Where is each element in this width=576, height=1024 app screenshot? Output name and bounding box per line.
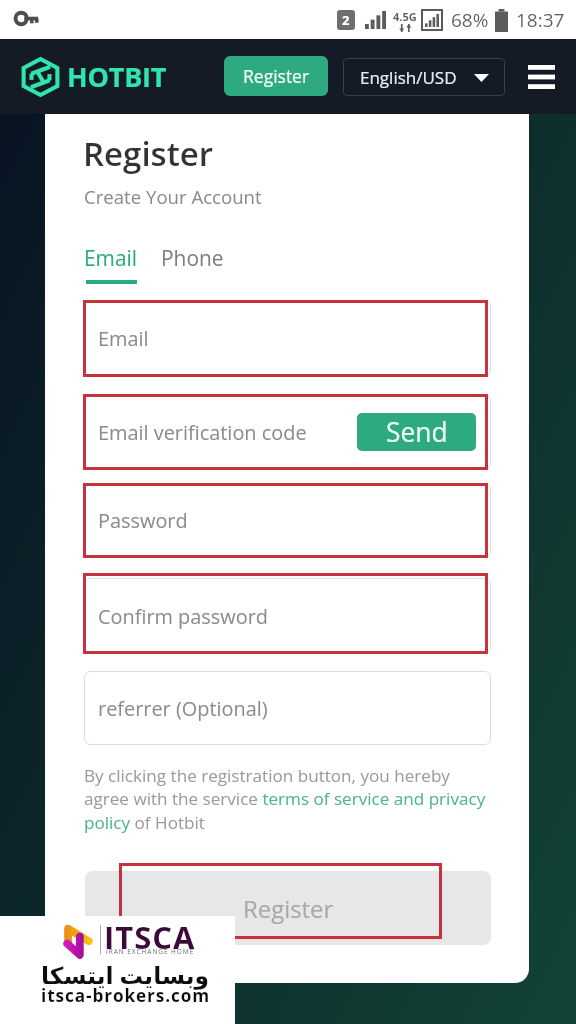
staticText: Email [98, 325, 149, 352]
staticText: itsca-brokers.com [41, 984, 211, 1007]
staticText: Phone [161, 244, 224, 272]
staticText: Email verification code [98, 419, 307, 446]
staticText: وبسایت ایتسکا [41, 959, 210, 991]
staticText: Register [243, 892, 334, 925]
button[interactable]: Password [84, 483, 491, 558]
staticText: By clicking the registration button, you… [84, 764, 494, 834]
staticText: Send [386, 414, 448, 450]
button[interactable]: Menu [518, 54, 564, 100]
button[interactable]: Register [224, 56, 328, 96]
button[interactable]: referrer (Optional) [84, 671, 491, 745]
staticText: 2 [342, 11, 350, 29]
button[interactable]: Send [357, 413, 476, 451]
staticText: Password [98, 507, 188, 534]
staticText: Email [84, 244, 138, 272]
staticText: ITSCA [104, 916, 196, 958]
button[interactable]: Email [84, 244, 138, 284]
button[interactable]: Register [85, 871, 491, 945]
button[interactable]: English/USD [343, 58, 505, 96]
button[interactable]: Email [84, 300, 491, 377]
staticText: 68% [451, 7, 489, 33]
staticText: IRAN EXCHANGE HOME [106, 947, 195, 956]
staticText: referrer (Optional) [98, 695, 268, 722]
staticText: 18:37 [516, 7, 565, 33]
staticText: English/USD [360, 66, 457, 89]
staticText: 4.5G [393, 9, 417, 24]
button[interactable]: Phone [161, 244, 224, 272]
button[interactable]: Email verification code [84, 394, 491, 470]
button[interactable]: HOTBIT [21, 58, 167, 95]
staticText: Register [83, 131, 213, 176]
staticText: Create Your Account [84, 184, 262, 209]
staticText: HOTBIT [67, 58, 167, 95]
staticText: Register [243, 64, 310, 88]
staticText: Confirm password [98, 603, 268, 630]
button[interactable]: Confirm password [84, 578, 491, 654]
